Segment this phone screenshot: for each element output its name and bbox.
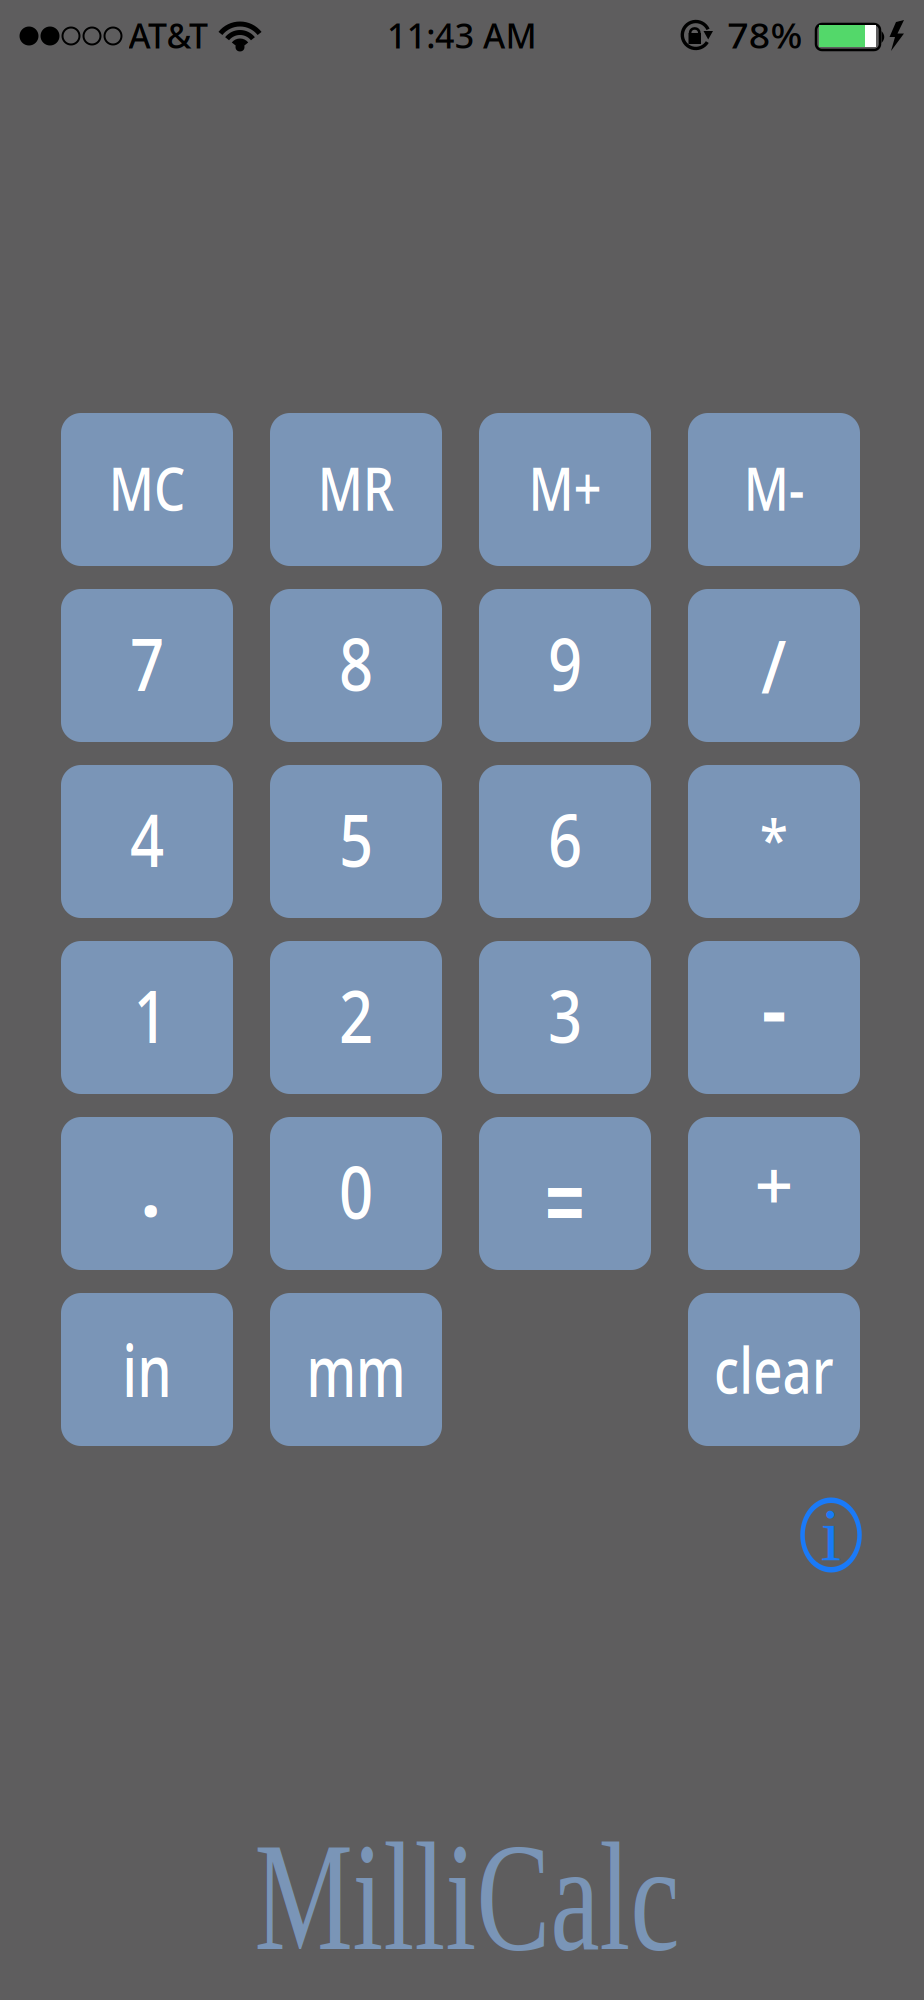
- button[interactable]: 0: [270, 1117, 442, 1270]
- staticText: 8: [335, 615, 376, 711]
- staticText: MR: [309, 448, 402, 527]
- staticText: mm: [289, 1323, 423, 1416]
- button[interactable]: -: [688, 941, 860, 1094]
- staticText: =: [533, 1126, 596, 1271]
- button[interactable]: 4: [61, 765, 233, 918]
- button[interactable]: mm: [270, 1293, 442, 1446]
- staticText: -: [758, 941, 789, 1070]
- staticText: *: [758, 801, 789, 875]
- staticText: +: [754, 1138, 793, 1228]
- button[interactable]: +: [688, 1117, 860, 1270]
- staticText: 0: [335, 1143, 376, 1239]
- staticText: MC: [100, 448, 193, 527]
- staticText: 3: [544, 967, 585, 1063]
- staticText: 9: [544, 615, 585, 711]
- button[interactable]: =: [479, 1117, 651, 1270]
- staticText: M+: [520, 448, 609, 527]
- button[interactable]: in: [61, 1293, 233, 1446]
- staticText: 5: [335, 791, 376, 887]
- staticText: MilliCalc: [254, 1836, 679, 1958]
- button[interactable]: MR: [270, 413, 442, 566]
- button[interactable]: M+: [479, 413, 651, 566]
- button[interactable]: 8: [270, 589, 442, 742]
- staticText: 6: [544, 791, 585, 887]
- button[interactable]: MC: [61, 413, 233, 566]
- staticText: M-: [737, 448, 811, 527]
- staticText: 1: [130, 967, 171, 1063]
- staticText: i: [820, 1494, 841, 1576]
- staticText: 2: [335, 967, 376, 1063]
- button[interactable]: clear: [688, 1293, 860, 1446]
- staticText: .: [139, 1127, 162, 1240]
- button[interactable]: M-: [688, 413, 860, 566]
- staticText: 7: [126, 615, 167, 711]
- button[interactable]: Info: [800, 1496, 862, 1574]
- button[interactable]: .: [61, 1117, 233, 1270]
- button[interactable]: 9: [479, 589, 651, 742]
- button[interactable]: 3: [479, 941, 651, 1094]
- button[interactable]: 2: [270, 941, 442, 1094]
- staticText: 4: [126, 791, 167, 887]
- button[interactable]: 7: [61, 589, 233, 742]
- staticText: /: [760, 618, 788, 713]
- button[interactable]: 5: [270, 765, 442, 918]
- button[interactable]: *: [688, 765, 860, 918]
- staticText: clear: [700, 1328, 847, 1411]
- staticText: 11:43 AM: [385, 12, 538, 58]
- button[interactable]: 6: [479, 765, 651, 918]
- staticText: 78%: [730, 12, 800, 58]
- button[interactable]: 1: [61, 941, 233, 1094]
- staticText: in: [114, 1320, 180, 1417]
- staticText: AT&T: [127, 12, 208, 58]
- button[interactable]: /: [688, 589, 860, 742]
